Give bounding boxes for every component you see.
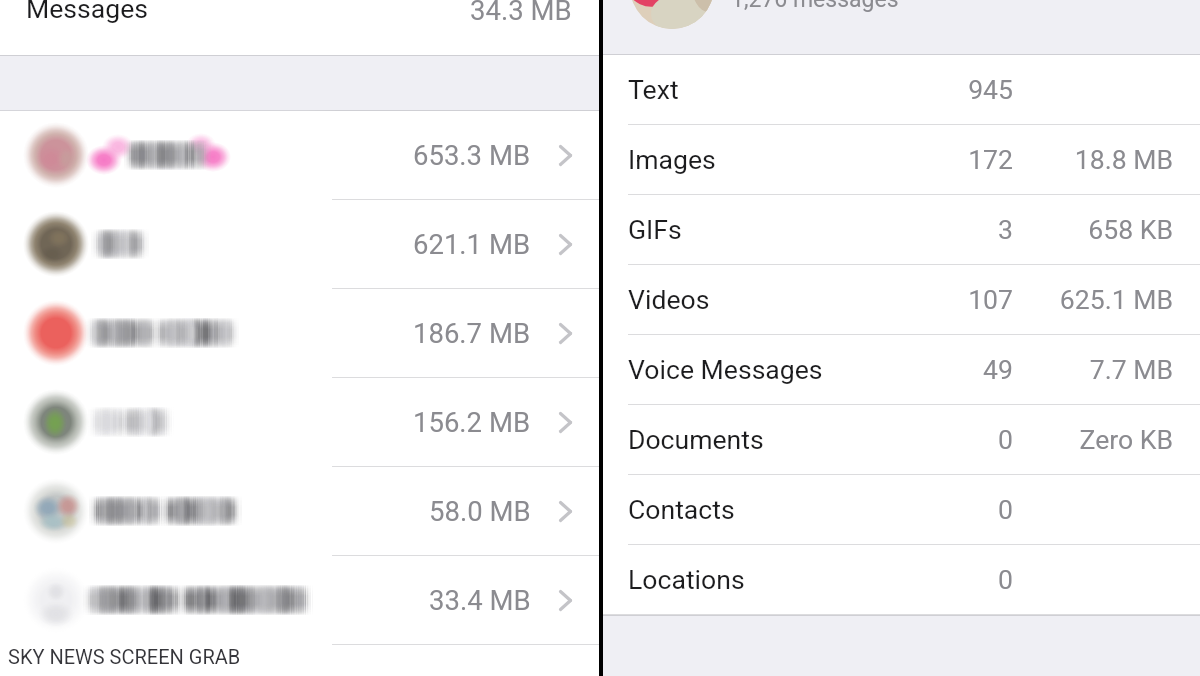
staticText: 653.3 MB — [413, 139, 531, 171]
staticText: Contacts — [628, 494, 735, 525]
staticText: 0 — [893, 494, 1013, 525]
staticText: Voice Messages — [628, 354, 823, 385]
button[interactable]: Contacts — [600, 475, 1200, 545]
other: Open — [559, 234, 572, 255]
button[interactable]: Messages — [0, 0, 600, 55]
button[interactable]: 621.1 MB — [0, 200, 600, 289]
other: Open — [559, 412, 572, 433]
other: Open — [559, 590, 572, 611]
staticText: Videos — [628, 284, 710, 315]
staticText: 7.7 MB — [1013, 354, 1173, 385]
button[interactable]: Voice Messages — [600, 335, 1200, 405]
staticText: 945 — [893, 74, 1013, 105]
staticText: 3 — [893, 214, 1013, 245]
staticText: Text — [628, 74, 679, 105]
staticText: Messages — [26, 0, 148, 24]
staticText: 156.2 MB — [413, 406, 531, 438]
other: Open — [559, 145, 572, 166]
staticText: 34.3 MB — [470, 0, 572, 26]
button[interactable]: Documents — [600, 405, 1200, 475]
button[interactable]: 1,276 messages — [600, 0, 1200, 55]
other: Open — [559, 323, 572, 344]
staticText: 49 — [893, 354, 1013, 385]
staticText: SKY NEWS SCREEN GRAB — [8, 645, 241, 668]
staticText: 658 KB — [1013, 214, 1173, 245]
staticText: 33.4 MB — [429, 584, 531, 616]
staticText: GIFs — [628, 214, 682, 245]
staticText: Images — [628, 144, 716, 175]
staticText: 172 — [893, 144, 1013, 175]
staticText: Zero KB — [1013, 424, 1173, 455]
button[interactable]: Locations — [600, 545, 1200, 615]
button[interactable]: 33.4 MB — [0, 556, 600, 645]
button[interactable]: 653.3 MB — [0, 111, 600, 200]
button[interactable]: Images — [600, 125, 1200, 195]
staticText: 186.7 MB — [413, 317, 531, 349]
staticText: 621.1 MB — [413, 228, 531, 260]
button[interactable]: GIFs — [600, 195, 1200, 265]
button[interactable]: 186.7 MB — [0, 289, 600, 378]
staticText: 0 — [893, 564, 1013, 595]
staticText: 625.1 MB — [1013, 284, 1173, 315]
staticText: Documents — [628, 424, 764, 455]
button[interactable]: Videos — [600, 265, 1200, 335]
staticText: 0 — [893, 424, 1013, 455]
other: Open — [559, 501, 572, 522]
staticText: 58.0 MB — [429, 495, 531, 527]
staticText: 107 — [893, 284, 1013, 315]
staticText: 1,276 messages — [731, 0, 899, 13]
staticText: 18.8 MB — [1013, 144, 1173, 175]
button[interactable]: 58.0 MB — [0, 467, 600, 556]
staticText: Locations — [628, 564, 745, 595]
button[interactable]: 156.2 MB — [0, 378, 600, 467]
button[interactable]: Text — [600, 55, 1200, 125]
